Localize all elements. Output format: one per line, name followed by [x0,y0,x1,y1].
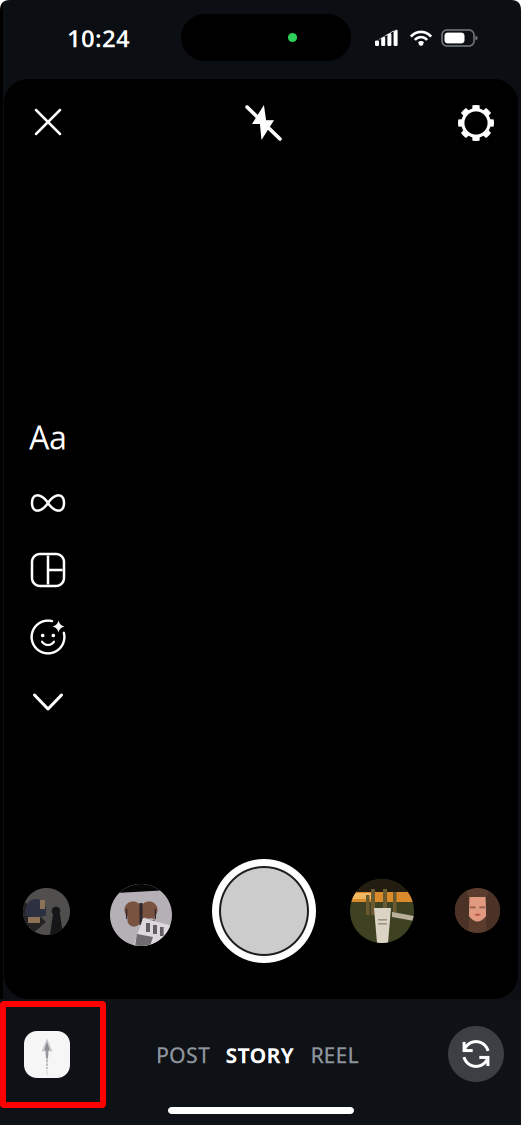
button[interactable]: Recent media [455,888,500,933]
button[interactable]: Close camera [20,96,76,148]
staticText: Aa [29,416,67,458]
button[interactable]: REEL [301,1035,368,1075]
button[interactable]: Camera settings [448,97,504,149]
button[interactable]: Boomerang [20,477,76,529]
staticText: REEL [310,1041,358,1069]
button[interactable]: Recent media [110,884,172,946]
staticText: 10:24 [67,22,130,54]
staticText: STORY [225,1041,293,1069]
button[interactable]: More options [20,676,76,728]
button[interactable]: Capture [212,859,316,963]
button[interactable]: Text [20,411,76,463]
button[interactable]: Create [24,1031,70,1078]
button[interactable]: Switch camera [448,1026,504,1082]
button[interactable]: Recent media [23,888,70,935]
button[interactable]: Layout [20,544,76,596]
button[interactable]: Effects [20,611,76,663]
button[interactable]: Flash off [236,96,292,148]
staticText: POST [156,1041,210,1069]
button[interactable]: Recent media [350,879,414,943]
button[interactable]: STORY [218,1035,301,1075]
button[interactable]: POST [148,1035,218,1075]
